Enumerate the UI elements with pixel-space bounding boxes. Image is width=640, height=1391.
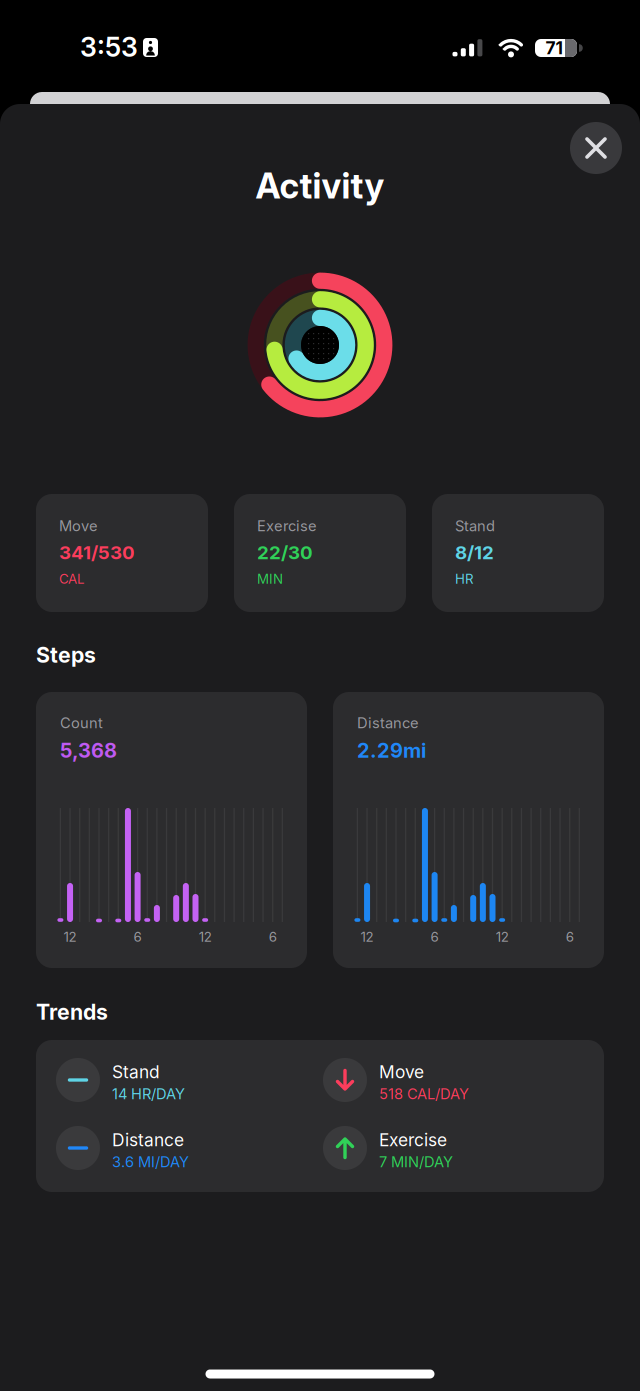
button[interactable]: Count: [36, 692, 307, 968]
staticText: CAL: [59, 571, 85, 587]
staticText: Trends: [36, 999, 108, 1025]
staticText: Steps: [36, 642, 96, 668]
staticText: Count: [60, 714, 103, 732]
staticText: 6: [566, 929, 574, 945]
button[interactable]: [570, 122, 622, 174]
staticText: 14 HR/DAY: [112, 1085, 185, 1103]
staticText: Stand: [112, 1062, 160, 1082]
staticText: 3:53: [80, 31, 138, 63]
staticText: 12: [360, 929, 373, 945]
staticText: 6: [431, 929, 439, 945]
staticText: 12: [199, 929, 212, 945]
staticText: 71: [545, 38, 562, 58]
staticText: 341/530: [59, 541, 135, 563]
staticText: Move: [59, 517, 98, 535]
button[interactable]: Move: [36, 494, 208, 612]
button[interactable]: Exercise: [323, 1114, 563, 1182]
staticText: HR: [455, 571, 474, 587]
staticText: Activity: [255, 166, 384, 206]
staticText: Distance: [112, 1130, 184, 1150]
staticText: 6: [269, 929, 277, 945]
staticText: 518 CAL/DAY: [379, 1085, 469, 1103]
staticText: 2.29mi: [357, 739, 426, 762]
staticText: 12: [63, 929, 76, 945]
button[interactable]: Exercise: [234, 494, 406, 612]
staticText: 7 MIN/DAY: [379, 1153, 453, 1171]
button[interactable]: Stand: [56, 1046, 296, 1114]
staticText: MIN: [257, 571, 283, 587]
staticText: Stand: [455, 517, 495, 535]
staticText: Move: [379, 1062, 424, 1082]
staticText: 3.6 MI/DAY: [112, 1153, 189, 1171]
button[interactable]: Distance: [56, 1114, 296, 1182]
staticText: 22/30: [257, 541, 313, 563]
staticText: Distance: [357, 714, 419, 732]
button[interactable]: Stand: [432, 494, 604, 612]
staticText: 12: [496, 929, 509, 945]
button[interactable]: Move: [323, 1046, 563, 1114]
button[interactable]: Distance: [333, 692, 604, 968]
staticText: 6: [134, 929, 142, 945]
staticText: 8/12: [455, 541, 494, 563]
staticText: Exercise: [379, 1130, 447, 1150]
staticText: Exercise: [257, 517, 317, 535]
staticText: 5,368: [60, 739, 117, 762]
